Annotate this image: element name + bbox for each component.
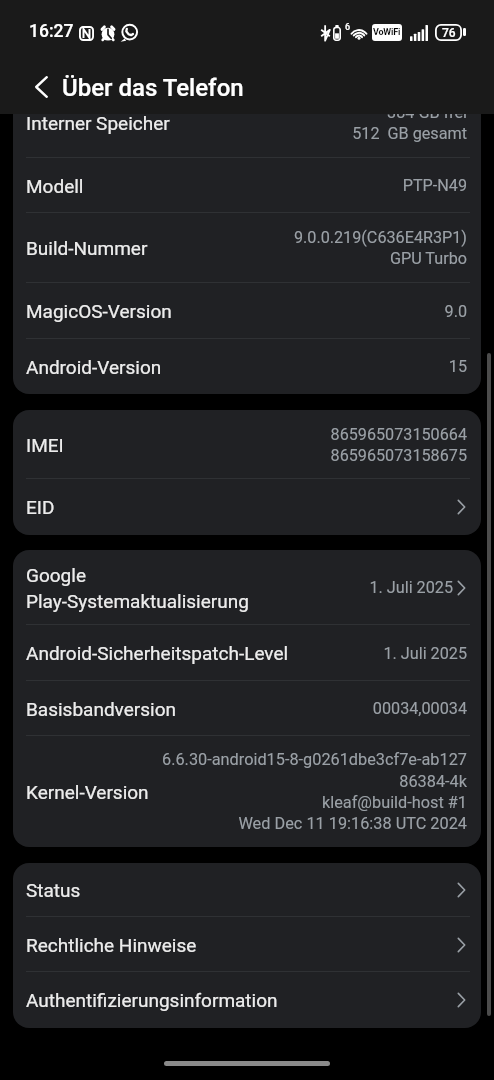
button[interactable]: Status bbox=[13, 863, 481, 917]
button[interactable]: Build-Nummer bbox=[13, 213, 481, 283]
staticText: Status bbox=[26, 879, 81, 901]
staticText: 00034,00034 bbox=[372, 699, 467, 718]
staticText: EID bbox=[26, 496, 55, 518]
button[interactable]: Modell bbox=[13, 158, 481, 213]
staticText: PTP-N49 bbox=[402, 176, 467, 195]
staticText: 865965073150664 865965073158675 bbox=[330, 425, 467, 465]
staticText: Android-Version bbox=[26, 356, 162, 378]
button[interactable]: Zurück bbox=[17, 56, 65, 114]
button[interactable]: Rechtliche Hinweise bbox=[13, 917, 481, 972]
button[interactable]: Google Play-Systemaktualisierung bbox=[13, 550, 481, 625]
staticText: VoWiFi bbox=[373, 27, 401, 38]
staticText: Interner Speicher bbox=[26, 114, 170, 134]
button[interactable]: Android-Sicherheitspatch-Level bbox=[13, 625, 481, 681]
button[interactable]: IMEI bbox=[13, 410, 481, 479]
button[interactable]: Authentifizierungsinformation bbox=[13, 972, 481, 1028]
staticText: 9.0 bbox=[444, 302, 467, 321]
staticText: 76 bbox=[442, 26, 456, 40]
button[interactable]: MagicOS-Version bbox=[13, 283, 481, 339]
staticText: IMEI bbox=[26, 434, 64, 456]
button[interactable]: EID bbox=[13, 479, 481, 535]
staticText: Android-Sicherheitspatch-Level bbox=[26, 642, 289, 664]
button[interactable]: Basisbandversion bbox=[13, 681, 481, 736]
button[interactable]: Kernel-Version bbox=[13, 736, 481, 847]
staticText: Authentifizierungsinformation bbox=[26, 989, 278, 1011]
staticText: 1. Juli 2025 bbox=[383, 644, 467, 663]
staticText: Modell bbox=[26, 175, 84, 197]
staticText: MagicOS-Version bbox=[26, 300, 172, 322]
staticText: Rechtliche Hinweise bbox=[26, 934, 197, 956]
button[interactable]: Android-Version bbox=[13, 339, 481, 394]
staticText: Basisbandversion bbox=[26, 698, 176, 720]
staticText: Über das Telefon bbox=[62, 74, 244, 102]
staticText: 15 bbox=[448, 357, 467, 376]
staticText: 16:27 bbox=[29, 21, 74, 42]
staticText: Kernel-Version bbox=[26, 781, 149, 803]
staticText: Build-Nummer bbox=[26, 237, 148, 259]
staticText: 6 bbox=[345, 22, 351, 33]
staticText: Google Play-Systemaktualisierung bbox=[26, 564, 249, 612]
staticText: 1. Juli 2025 bbox=[369, 578, 453, 597]
staticText: 384 GB frei 512 GB gesamt bbox=[352, 114, 467, 143]
staticText: 6.6.30-android15-8-g0261dbe3cf7e-ab127 8… bbox=[161, 750, 467, 833]
button[interactable]: Interner Speicher bbox=[13, 114, 481, 158]
staticText: 9.0.0.219(C636E4R3P1) GPU Turbo bbox=[293, 228, 467, 268]
